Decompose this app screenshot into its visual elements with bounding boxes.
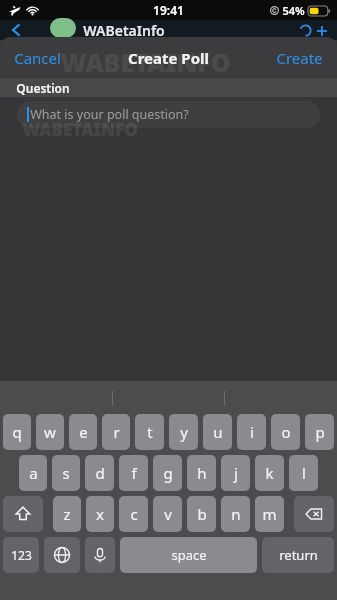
button[interactable]: 123 bbox=[3, 537, 39, 573]
button[interactable]: r bbox=[102, 414, 130, 450]
button[interactable]: y bbox=[169, 414, 198, 450]
staticText: a bbox=[29, 463, 38, 483]
staticText: Create bbox=[276, 48, 323, 68]
staticText: n bbox=[231, 504, 241, 524]
button[interactable]: e bbox=[69, 414, 97, 450]
staticText: y bbox=[180, 422, 188, 442]
staticText: v bbox=[164, 504, 172, 524]
button[interactable]: x bbox=[86, 496, 114, 532]
button[interactable]: i bbox=[237, 414, 266, 450]
button[interactable]: w bbox=[36, 414, 64, 450]
staticText: p bbox=[315, 422, 325, 442]
button[interactable]: n bbox=[221, 496, 250, 532]
button[interactable]: Switch keyboard bbox=[44, 537, 80, 573]
button[interactable]: a bbox=[19, 455, 47, 491]
staticText: c bbox=[130, 504, 138, 524]
staticText: Question bbox=[16, 80, 70, 96]
button[interactable]: Dictate bbox=[85, 537, 115, 573]
staticText: h bbox=[197, 463, 207, 483]
button[interactable]: Shift bbox=[3, 496, 43, 532]
staticText: 123 bbox=[11, 547, 32, 563]
button[interactable]: l bbox=[289, 455, 318, 491]
staticText: b bbox=[197, 504, 207, 524]
button[interactable]: f bbox=[119, 455, 148, 491]
button[interactable]: Create bbox=[262, 40, 337, 76]
button[interactable]: j bbox=[221, 455, 250, 491]
staticText: WABetaInfo bbox=[83, 21, 165, 40]
button[interactable]: Backspace bbox=[294, 496, 334, 532]
staticText: What is your poll question? bbox=[30, 106, 189, 123]
button[interactable]: o bbox=[271, 414, 300, 450]
staticText: u bbox=[213, 422, 223, 442]
button[interactable]: c bbox=[119, 496, 148, 532]
staticText: j bbox=[234, 463, 238, 483]
staticText: Create Poll bbox=[128, 48, 209, 68]
staticText: s bbox=[62, 463, 70, 483]
staticText: l bbox=[302, 463, 306, 483]
button[interactable]: What is your poll question? bbox=[17, 101, 320, 128]
staticText: t bbox=[147, 422, 153, 442]
button[interactable]: Cancel bbox=[0, 40, 75, 76]
button[interactable]: k bbox=[255, 455, 284, 491]
staticText: g bbox=[163, 463, 173, 483]
staticText: WABETAINFO bbox=[22, 118, 138, 141]
staticText: f bbox=[131, 463, 137, 483]
staticText: return bbox=[279, 546, 318, 564]
staticText: 19:41 bbox=[153, 2, 184, 18]
staticText: m bbox=[262, 504, 277, 524]
button[interactable]: t bbox=[135, 414, 164, 450]
button[interactable]: u bbox=[203, 414, 232, 450]
staticText: x bbox=[96, 504, 104, 524]
button[interactable]: q bbox=[3, 414, 31, 450]
staticText: k bbox=[265, 463, 274, 483]
staticText: z bbox=[63, 504, 71, 524]
staticText: q bbox=[12, 422, 22, 442]
staticText: e bbox=[79, 422, 88, 442]
button[interactable]: s bbox=[52, 455, 80, 491]
button[interactable]: b bbox=[187, 496, 216, 532]
staticText: WABETAINFO bbox=[60, 45, 231, 79]
button[interactable]: d bbox=[85, 455, 114, 491]
staticText: i bbox=[250, 422, 254, 442]
button[interactable]: m bbox=[255, 496, 284, 532]
staticText: o bbox=[281, 422, 291, 442]
staticText: 54% bbox=[282, 3, 305, 18]
button[interactable]: space bbox=[120, 537, 257, 573]
staticText: Cancel bbox=[14, 48, 61, 68]
button[interactable]: p bbox=[305, 414, 334, 450]
button[interactable]: g bbox=[153, 455, 182, 491]
button[interactable]: z bbox=[53, 496, 81, 532]
button[interactable]: v bbox=[153, 496, 182, 532]
staticText: w bbox=[44, 422, 56, 442]
button[interactable]: return bbox=[262, 537, 334, 573]
staticText: space bbox=[171, 546, 207, 564]
staticText: r bbox=[113, 422, 120, 442]
staticText: d bbox=[95, 463, 105, 483]
button[interactable]: h bbox=[187, 455, 216, 491]
